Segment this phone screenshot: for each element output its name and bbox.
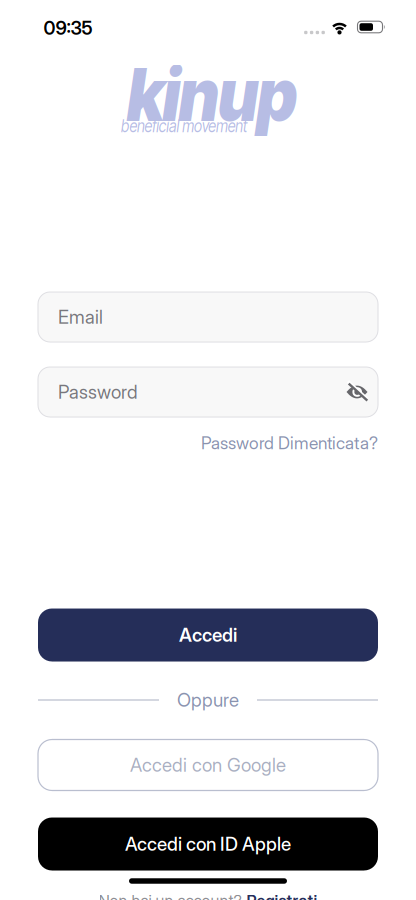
staticText: Accedi bbox=[179, 624, 237, 646]
staticText: Accedi con Google bbox=[130, 754, 286, 776]
staticText: beneficial movement bbox=[109, 115, 259, 136]
button[interactable]: Accedi con ID Apple bbox=[38, 817, 378, 870]
staticText: 09:35 bbox=[43, 17, 92, 39]
button[interactable]: Non hai un account? bbox=[98, 892, 317, 900]
button[interactable]: Accedi bbox=[38, 608, 378, 661]
staticText: Password bbox=[58, 381, 138, 403]
staticText: Oppure bbox=[177, 689, 239, 711]
staticText: Password Dimenticata? bbox=[201, 433, 378, 453]
staticText: Registrati bbox=[246, 892, 317, 900]
staticText: Email bbox=[58, 306, 103, 328]
staticText: Accedi con ID Apple bbox=[125, 833, 291, 855]
button[interactable]: Accedi con Google bbox=[38, 739, 378, 790]
button[interactable]: Password Dimenticata? bbox=[201, 433, 378, 453]
staticText: kinup bbox=[112, 49, 312, 141]
staticText: Non hai un account? bbox=[98, 892, 241, 900]
button[interactable]: Mostra password bbox=[343, 378, 371, 406]
